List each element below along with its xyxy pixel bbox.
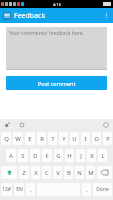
button[interactable]: Y [59,132,68,145]
staticText: E [28,135,32,143]
staticText: Y [62,135,66,143]
staticText: S [21,152,25,160]
staticText: K [90,152,94,160]
staticText: R [40,135,44,143]
staticText: V [56,169,60,177]
button[interactable]: B [64,166,73,179]
staticText: Q [4,135,9,143]
button[interactable]: Voice input [4,122,10,128]
staticText: L [101,152,105,160]
button[interactable]: M [86,166,95,179]
staticText: EN [16,186,23,193]
button[interactable]: S [18,149,28,162]
button[interactable]: I [81,132,90,145]
button[interactable]: Keyboard settings [103,122,109,128]
button[interactable]: More options [100,8,113,23]
staticText: B [67,169,71,177]
button[interactable]: H [65,149,74,162]
staticText: H [67,152,72,160]
staticText: X [34,169,38,177]
button[interactable]: Z [19,166,29,179]
button[interactable]: P [103,132,112,145]
button[interactable]: , [26,183,35,196]
staticText: Post comment [38,80,76,87]
button[interactable]: V [53,166,62,179]
button[interactable]: Shift [1,166,17,179]
staticText: Feedback [14,11,46,21]
button[interactable]: G [54,149,63,162]
staticText: C [45,169,49,177]
staticText: A [9,152,13,160]
button[interactable]: T [48,132,57,145]
staticText: 12# [2,186,11,193]
button[interactable]: 12# [1,183,12,196]
button[interactable]: Done [93,183,112,196]
staticText: F [45,152,49,160]
button[interactable]: Post comment [6,76,107,90]
staticText: 4:16 [53,2,61,7]
staticText: I [84,135,87,143]
button[interactable]: O [92,132,101,145]
staticText: T [51,135,55,143]
staticText: O [94,135,99,143]
staticText: G [56,152,61,160]
button[interactable]: W [13,132,23,145]
button[interactable]: R [37,132,46,145]
button[interactable]: . [82,183,91,196]
button[interactable]: Stickers [19,122,25,128]
staticText: Done [96,186,109,193]
button[interactable]: Q [1,132,11,145]
button[interactable]: C [42,166,51,179]
button[interactable]: D [30,149,40,162]
button[interactable]: N [75,166,84,179]
button[interactable]: Your comments/ feedback here. [6,27,107,70]
button[interactable]: EN [14,183,24,196]
button[interactable]: U [70,132,79,145]
button[interactable]: K [87,149,96,162]
staticText: M [88,169,94,177]
staticText: P [106,135,110,143]
staticText: Z [22,169,26,177]
button[interactable]: F [42,149,52,162]
button[interactable]: A [6,149,16,162]
button[interactable]: L [98,149,107,162]
staticText: U [72,135,77,143]
staticText: D [33,152,38,160]
staticText: W [15,135,21,143]
staticText: . [86,186,88,194]
staticText: Your comments/ feedback here. [9,30,84,37]
button[interactable]: Backspace [97,166,112,179]
button[interactable]: J [76,149,85,162]
staticText: , [30,186,32,194]
button[interactable]: E [25,132,35,145]
button[interactable]: X [31,166,40,179]
staticText: J [80,152,82,160]
staticText: N [77,169,82,177]
